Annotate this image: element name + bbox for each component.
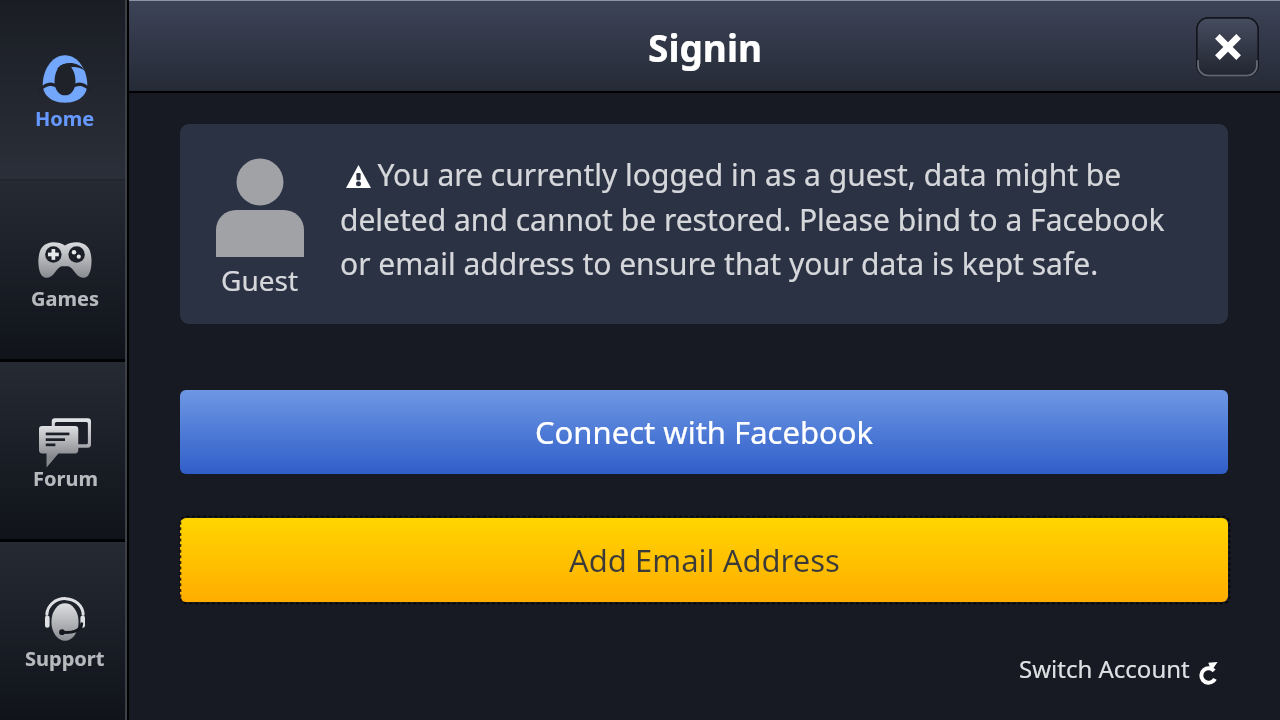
button[interactable]: Connect with Facebook [180,390,1228,474]
staticText: Add Email Address [569,539,840,581]
button[interactable]: Switch Account [1019,655,1219,688]
staticText: Connect with Facebook [535,411,874,453]
button[interactable]: Support [0,540,126,720]
button[interactable]: Add Email Address [180,518,1228,602]
staticText: Games [31,285,99,312]
button[interactable]: Forum [0,360,126,540]
staticText: Forum [33,465,98,492]
button[interactable]: Games [0,180,126,360]
staticText: Home [35,105,95,132]
button[interactable]: Close [1196,17,1259,77]
staticText: You are currently logged in as a guest, … [340,154,1188,283]
staticText: Support [25,645,105,672]
staticText: Signin [648,22,762,72]
button[interactable]: Home [0,0,126,180]
staticText: Switch Account [1019,652,1190,685]
staticText: Guest [221,261,299,299]
